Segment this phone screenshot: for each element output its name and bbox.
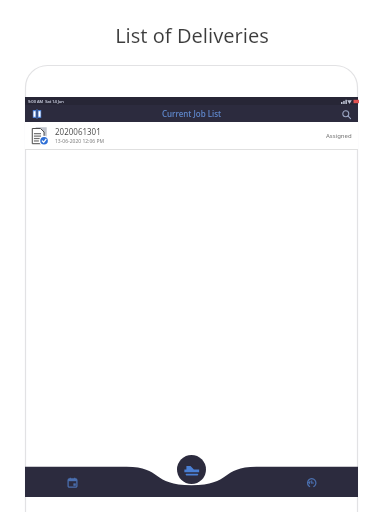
button[interactable]: Search bbox=[339, 107, 353, 121]
staticText: Current Job List bbox=[162, 108, 222, 119]
button[interactable]: New delivery bbox=[177, 455, 206, 484]
button[interactable]: History bbox=[302, 473, 320, 491]
staticText: List of Deliveries bbox=[115, 22, 269, 49]
staticText: 2020061301 bbox=[55, 126, 101, 137]
button[interactable]: 2020061301 bbox=[25, 122, 358, 150]
staticText: Assigned bbox=[326, 132, 352, 140]
button[interactable]: Calendar bbox=[63, 473, 81, 491]
staticText: 9:00 AM Sat 14 Jun bbox=[28, 99, 64, 104]
button[interactable]: Menu bbox=[30, 107, 44, 121]
staticText: 13-06-2020 12:06 PM bbox=[55, 138, 105, 145]
